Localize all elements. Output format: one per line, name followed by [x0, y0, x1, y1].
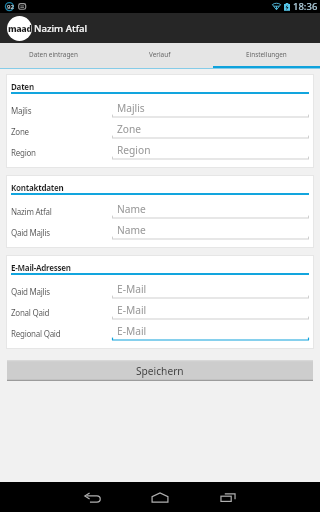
button[interactable]: Home — [140, 482, 180, 512]
staticText: 92 — [7, 3, 14, 11]
staticText: Zonal Qaid — [11, 307, 112, 318]
staticText: Majlis — [11, 105, 112, 116]
staticText: Verlauf — [149, 50, 171, 59]
staticText: E-Mail-Adressen — [11, 262, 71, 273]
staticText: Regional Qaid — [11, 328, 112, 339]
staticText: E-Mail — [117, 303, 147, 317]
staticText: maad — [8, 23, 32, 35]
button[interactable]: Verlauf — [106, 43, 213, 66]
staticText: Speichern — [136, 364, 184, 378]
button[interactable]: E-Mail — [112, 323, 309, 344]
button[interactable]: Majlis — [112, 100, 309, 121]
staticText: Majlis — [117, 101, 145, 115]
button[interactable]: App logo — [7, 16, 32, 41]
button[interactable]: E-Mail — [112, 281, 309, 302]
staticText: Daten eintragen — [29, 50, 78, 59]
staticText: Qaid Majlis — [11, 286, 112, 297]
staticText: Zone — [11, 126, 112, 137]
staticText: Qaid Majlis — [11, 227, 112, 238]
button[interactable]: Einstellungen — [213, 43, 320, 66]
staticText: Region — [11, 147, 112, 158]
staticText: Name — [117, 202, 146, 216]
button[interactable]: Recent apps — [208, 482, 248, 512]
staticText: Name — [117, 223, 146, 237]
button[interactable]: Speichern — [7, 360, 313, 381]
staticText: Kontaktdaten — [11, 182, 64, 193]
button[interactable]: Name — [112, 201, 309, 222]
staticText: Nazim Atfal — [34, 22, 88, 35]
button[interactable]: Name — [112, 222, 309, 243]
staticText: E-Mail — [117, 324, 147, 338]
staticText: 18:36 — [293, 0, 318, 13]
staticText: E-Mail — [117, 282, 147, 296]
button[interactable]: Zone — [112, 121, 309, 142]
button[interactable]: E-Mail — [112, 302, 309, 323]
button[interactable]: Daten eintragen — [0, 43, 106, 66]
staticText: Region — [117, 143, 151, 157]
button[interactable]: Region — [112, 142, 309, 163]
button[interactable]: Back — [72, 482, 112, 512]
staticText: Einstellungen — [246, 50, 287, 59]
staticText: Zone — [117, 122, 142, 136]
staticText: Daten — [11, 81, 34, 92]
staticText: Nazim Atfal — [11, 206, 112, 217]
